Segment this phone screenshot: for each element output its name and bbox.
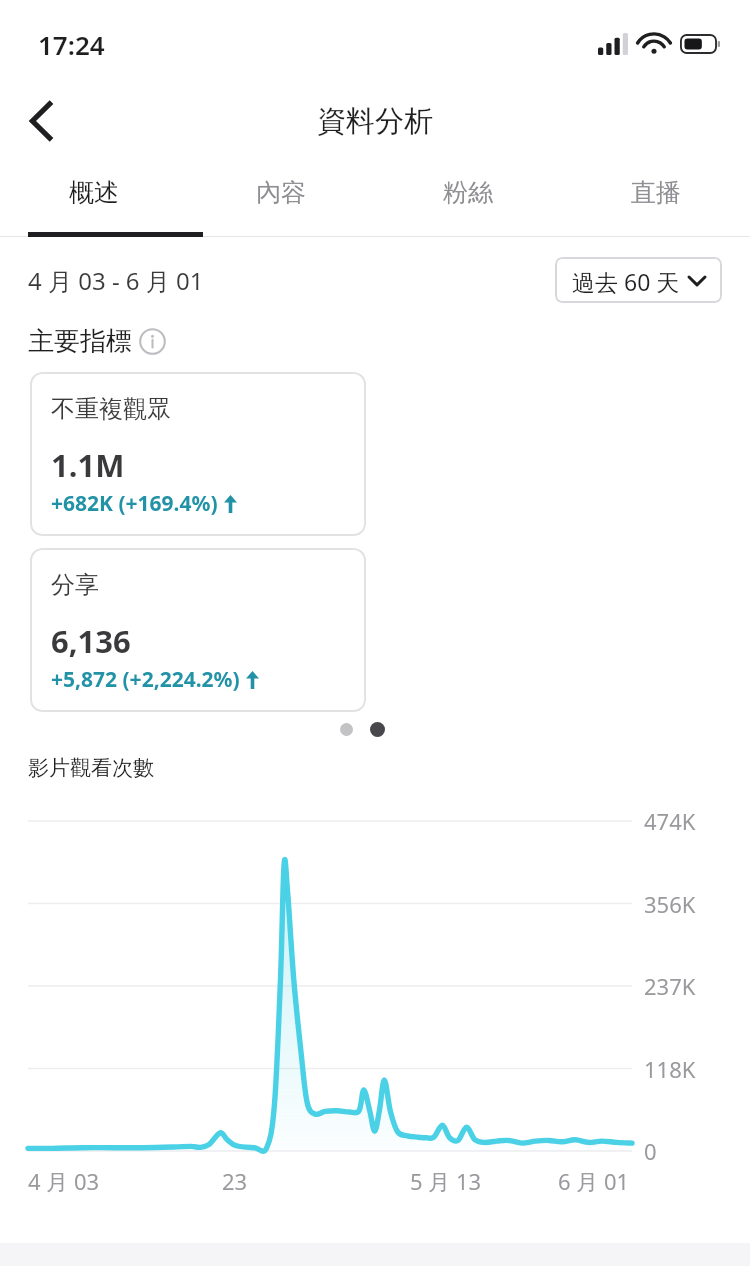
staticText: 概述 — [69, 177, 119, 208]
staticText: 23 — [222, 1166, 248, 1196]
staticText: 0 — [644, 1136, 657, 1166]
button[interactable]: 過去 60 天 — [555, 257, 722, 303]
staticText: 不重複觀眾 — [51, 394, 171, 424]
staticText: 474K — [644, 806, 696, 836]
staticText: 17:24 — [38, 27, 105, 62]
staticText: 直播 — [631, 177, 681, 208]
button[interactable]: Back — [14, 93, 70, 149]
button[interactable]: 直播 — [562, 158, 750, 233]
button[interactable]: 不重複觀眾 — [30, 372, 366, 536]
button[interactable]: 分享 — [30, 548, 366, 712]
staticText: +5,872 (+2,224.2%) — [51, 665, 240, 694]
button[interactable]: 粉絲 — [374, 158, 562, 233]
staticText: 6,136 — [51, 620, 131, 662]
button[interactable]: 概述 — [0, 158, 187, 233]
staticText: 356K — [644, 889, 696, 919]
button[interactable]: 內容 — [187, 158, 374, 233]
staticText: +682K (+169.4%) — [51, 489, 218, 518]
staticText: 主要指標 — [28, 325, 132, 358]
staticText: 1.1M — [51, 444, 125, 486]
staticText: 粉絲 — [443, 177, 493, 208]
staticText: 資料分析 — [317, 103, 433, 140]
staticText: 內容 — [256, 177, 306, 208]
staticText: 6 月 01 — [558, 1166, 630, 1196]
staticText: 5 月 13 — [410, 1166, 482, 1196]
button[interactable]: More information — [139, 328, 166, 355]
staticText: 過去 60 天 — [572, 266, 680, 294]
staticText: 分享 — [51, 570, 99, 600]
staticText: 影片觀看次數 — [28, 755, 154, 781]
staticText: 4 月 03 - 6 月 01 — [28, 264, 204, 297]
staticText: 118K — [644, 1054, 696, 1084]
staticText: 237K — [644, 971, 696, 1001]
staticText: 4 月 03 — [28, 1166, 100, 1196]
